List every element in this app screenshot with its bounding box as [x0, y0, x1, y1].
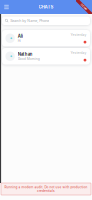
staticText: CHATS: [38, 4, 53, 10]
staticText: Yesterday: [70, 33, 86, 37]
staticText: Good Morning: [18, 57, 40, 61]
staticText: Hi: [18, 39, 21, 43]
staticText: Ali: [18, 34, 23, 39]
staticText: Search by Name, Phone: [10, 19, 49, 23]
staticText: Running a modern audit. Do not use with …: [4, 185, 87, 189]
staticText: credentials: [37, 189, 55, 193]
staticText: Yesterday: [70, 51, 86, 55]
staticText: DEMO: [80, 5, 88, 9]
staticText: Nathan: [18, 52, 33, 57]
button[interactable]: Ali: [2, 30, 90, 46]
button[interactable]: Menu: [0, 0, 13, 14]
button[interactable]: Nathan: [2, 48, 90, 64]
